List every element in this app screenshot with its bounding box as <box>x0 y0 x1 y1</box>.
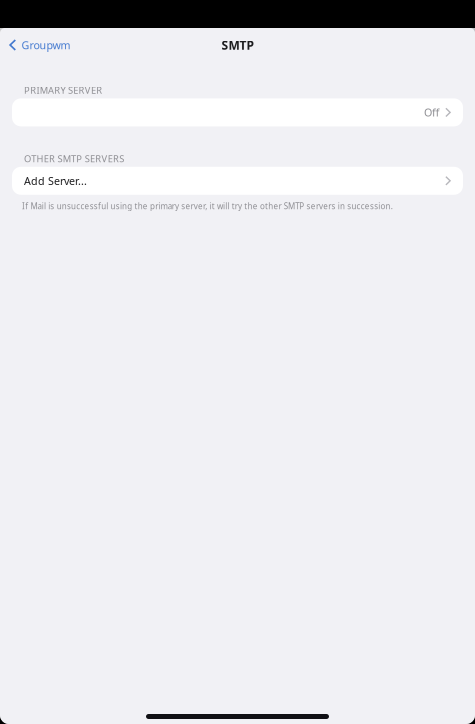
staticText: Add Server... <box>24 174 87 188</box>
staticText: If Mail is unsuccessful using the primar… <box>22 201 393 211</box>
staticText: OTHER SMTP SERVERS <box>24 152 124 165</box>
staticText: PRIMARY SERVER <box>24 84 102 96</box>
staticText: Off <box>424 105 439 119</box>
button[interactable]: Off <box>12 98 463 126</box>
button[interactable]: Groupwm <box>0 33 70 57</box>
staticText: Groupwm <box>21 38 70 52</box>
button[interactable]: Add Server... <box>12 167 463 195</box>
staticText: SMTP <box>221 37 253 53</box>
